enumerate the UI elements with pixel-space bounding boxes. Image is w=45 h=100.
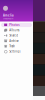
staticText: Amelia bbox=[3, 14, 14, 17]
button[interactable]: Albums bbox=[0, 28, 33, 33]
staticText: Shared bbox=[9, 34, 18, 37]
button[interactable]: Trash bbox=[0, 43, 33, 49]
button[interactable]: Photos bbox=[0, 22, 33, 28]
staticText: Photos bbox=[9, 23, 19, 27]
staticText: amelia@mail.com bbox=[3, 18, 13, 19]
button[interactable]: Shared bbox=[0, 33, 33, 38]
button[interactable]: Settings bbox=[0, 49, 33, 54]
button[interactable]: Archive bbox=[0, 38, 33, 43]
staticText: Archive bbox=[9, 39, 19, 43]
staticText: Albums bbox=[9, 28, 19, 32]
staticText: Trash bbox=[9, 44, 15, 48]
staticText: Settings bbox=[9, 50, 20, 53]
